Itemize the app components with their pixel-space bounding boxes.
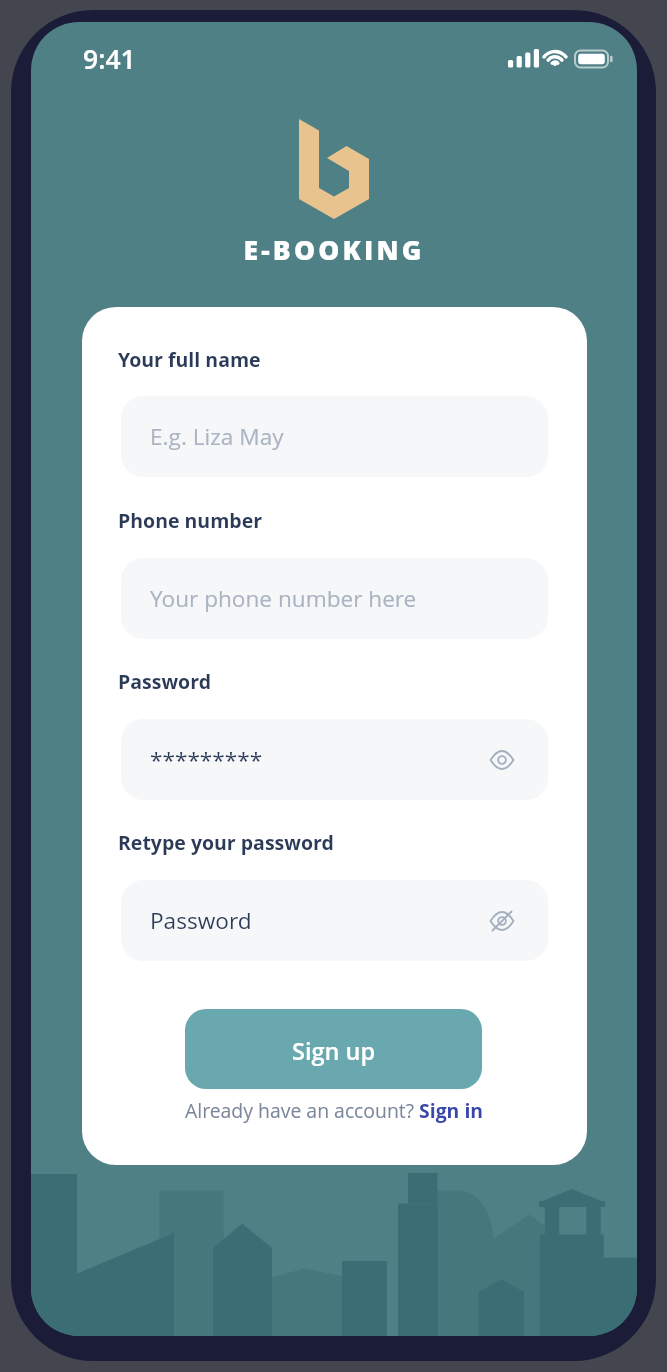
button[interactable]: ********* [121,719,548,800]
staticText: Your phone number here [150,583,417,614]
button[interactable]: Show password [485,743,519,777]
button[interactable]: E.g. Liza May [121,396,548,477]
staticText: E-BOOKING [31,232,637,268]
staticText: Sign up [292,1035,376,1067]
other: Status icons [505,44,615,72]
staticText: ********* [150,744,263,775]
staticText: Already have an account? Sign in [185,1097,484,1123]
button[interactable]: Your phone number here [121,558,548,639]
button[interactable]: Password [121,880,548,961]
button[interactable]: Already have an account? Sign in [185,1097,484,1123]
staticText: Your full name [118,346,261,373]
button[interactable]: Hide password [485,904,519,938]
staticText: E.g. Liza May [150,421,284,452]
staticText: Password [150,905,252,936]
staticText: Retype your password [118,829,334,856]
button[interactable]: Sign up [185,1009,482,1089]
staticText: 9:41 [83,41,136,77]
staticText: Password [118,668,211,695]
staticText: Phone number [118,507,263,534]
